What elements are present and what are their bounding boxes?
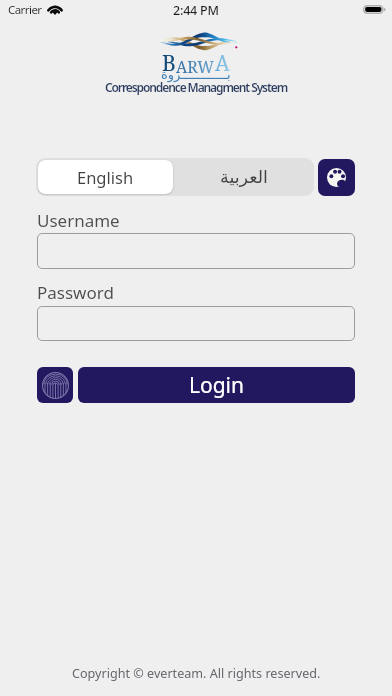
staticText: بــــــــــــروة (161, 67, 231, 82)
staticText: English (77, 166, 134, 188)
staticText: Login (189, 371, 245, 400)
button[interactable]: العربية (173, 158, 314, 196)
staticText: Password (37, 281, 114, 304)
staticText: Username (37, 209, 120, 232)
staticText: Copyright © everteam. All rights reserve… (72, 665, 321, 682)
button[interactable]: Login (78, 367, 355, 403)
button[interactable]: English (38, 160, 173, 194)
button[interactable] (37, 233, 355, 269)
button[interactable]: Login with fingerprint (37, 367, 73, 403)
staticText: Carrier (8, 2, 42, 18)
button[interactable] (37, 306, 355, 341)
staticText: ARW (176, 56, 215, 78)
staticText: Correspondence Managment System (105, 79, 288, 95)
staticText: A (215, 49, 230, 78)
button[interactable]: Change theme (318, 159, 355, 196)
staticText: B (162, 49, 176, 78)
staticText: 2:44 PM (173, 2, 219, 19)
staticText: العربية (220, 167, 268, 187)
